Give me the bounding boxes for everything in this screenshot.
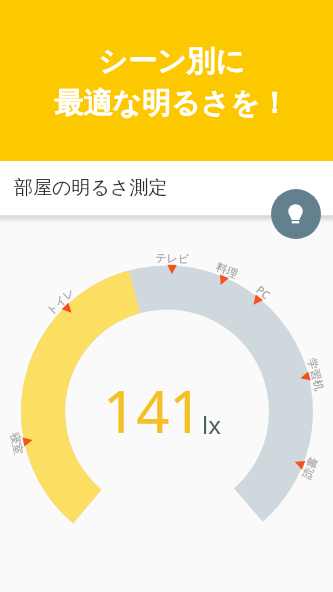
staticText: 部屋の明るさ測定 (14, 176, 168, 200)
staticText: 最適な明るさを！ (54, 85, 289, 122)
button[interactable]: Measure brightness (271, 189, 321, 239)
staticText: シーン別に (98, 43, 246, 80)
